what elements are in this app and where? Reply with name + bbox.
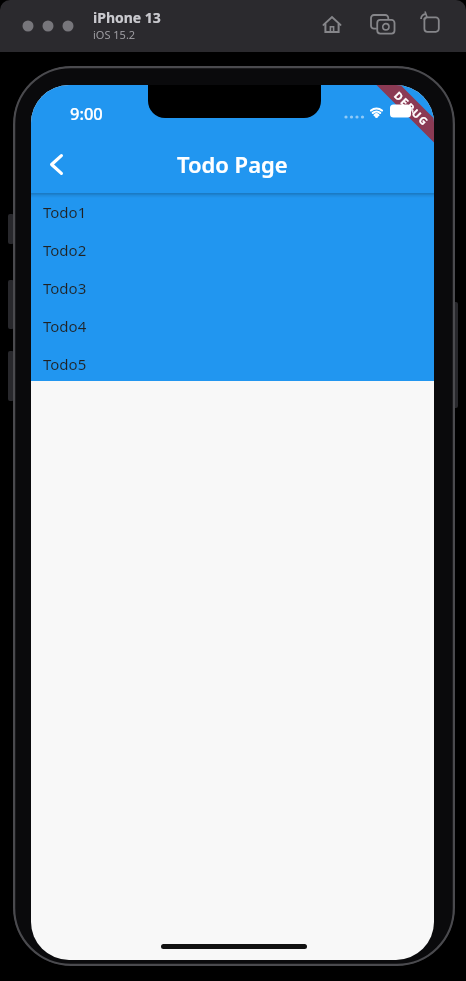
staticText: 9:00 [70,102,103,124]
staticText: Todo5 [43,354,87,374]
button[interactable] [36,144,76,184]
button[interactable]: Todo5 [31,345,434,383]
staticText: Todo1 [43,202,87,222]
button[interactable]: Todo3 [31,269,434,307]
button[interactable]: Todo1 [31,193,434,231]
staticText: Todo4 [43,316,87,336]
staticText: DEBUG [391,88,432,129]
button[interactable]: Todo2 [31,231,434,269]
staticText: iPhone 13 [93,8,161,27]
staticText: Todo2 [43,240,87,260]
button[interactable] [366,7,399,42]
button[interactable] [315,7,348,41]
staticText: Todo Page [177,149,288,179]
staticText: iOS 15.2 [93,27,136,42]
button[interactable] [413,5,446,41]
staticText: Todo3 [43,278,87,298]
button[interactable]: Todo4 [31,307,434,345]
